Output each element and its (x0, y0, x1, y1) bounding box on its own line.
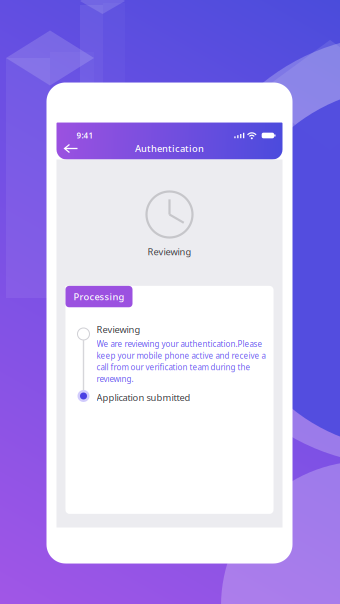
staticText: We are reviewing your authentication.Ple… (96, 339, 265, 384)
staticText: Reviewing (147, 245, 191, 258)
button[interactable]: Back (60, 140, 81, 156)
staticText: Authentication (135, 142, 204, 155)
staticText: 9:41 (76, 130, 93, 141)
staticText: Reviewing (96, 323, 140, 336)
staticText: Processing (73, 290, 124, 303)
staticText: Application submitted (96, 391, 190, 404)
